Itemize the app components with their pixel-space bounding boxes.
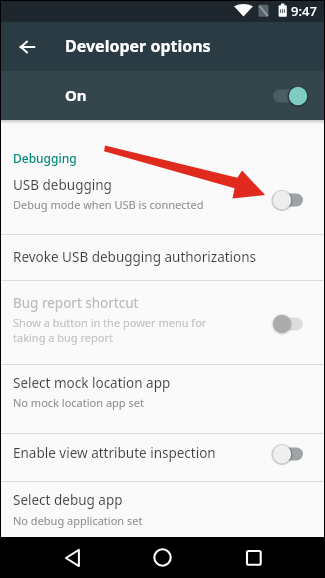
staticText: Enable view attribute inspection [13,444,216,462]
staticText: No mock location app set [13,395,144,410]
staticText: Debug mode when USB is connected [13,197,204,212]
staticText: Developer options [65,35,211,57]
button[interactable] [0,481,325,537]
staticText: Select debug app [13,491,123,509]
staticText: USB debugging [13,176,112,194]
button[interactable] [40,537,105,578]
button[interactable] [0,433,325,481]
button[interactable]: On [0,71,325,120]
button[interactable] [5,22,49,71]
staticText: Bug report shortcut [13,294,139,312]
button[interactable] [0,164,325,234]
button[interactable] [0,280,325,364]
staticText: 9:47 [291,2,317,20]
staticText: No debug application set [13,513,143,528]
staticText: Debugging [13,150,77,166]
button[interactable] [130,537,195,578]
staticText: Show a button in the power menu for taki… [13,315,207,345]
staticText: Revoke USB debugging authorizations [13,248,257,266]
button[interactable] [0,364,325,433]
staticText: On [65,85,87,105]
button[interactable] [221,537,286,578]
button[interactable] [0,234,325,280]
staticText: Select mock location app [13,374,171,392]
